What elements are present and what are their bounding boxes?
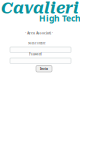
staticText: Password	[29, 52, 42, 56]
staticText: - Area Associati -	[25, 30, 53, 35]
button[interactable]: Invia	[36, 65, 52, 72]
staticText: Cavalieri	[1, 0, 79, 17]
staticText: Invia	[40, 67, 48, 71]
staticText: High Tech	[39, 12, 81, 24]
staticText: Nome Utente	[28, 41, 45, 45]
